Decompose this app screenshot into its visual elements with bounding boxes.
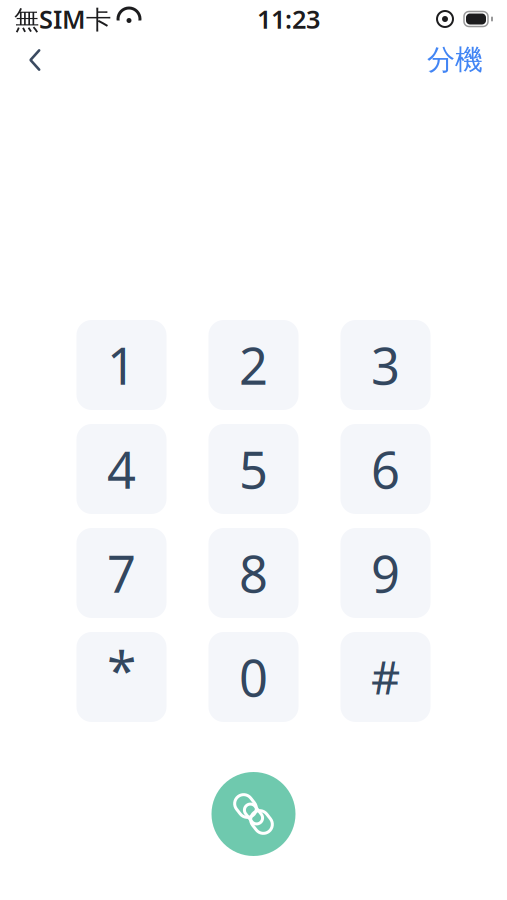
staticText: 5 <box>239 435 268 503</box>
button[interactable]: Back <box>8 36 62 84</box>
staticText: * <box>107 634 136 704</box>
staticText: 分機 <box>427 43 483 77</box>
staticText: # <box>371 647 400 707</box>
button[interactable]: Call <box>211 772 295 856</box>
button[interactable]: 6 <box>340 424 430 514</box>
staticText: 8 <box>239 539 268 607</box>
button[interactable]: 8 <box>208 528 298 618</box>
button[interactable]: 7 <box>76 528 166 618</box>
button[interactable]: 9 <box>340 528 430 618</box>
button[interactable]: # <box>340 632 430 722</box>
staticText: 無SIM卡 <box>14 2 111 36</box>
button[interactable]: 分機 <box>411 36 499 84</box>
staticText: 6 <box>371 435 400 503</box>
staticText: 2 <box>239 331 268 399</box>
staticText: 7 <box>107 539 136 607</box>
staticText: 1 <box>107 331 136 399</box>
staticText: 11:23 <box>257 2 320 36</box>
button[interactable]: 1 <box>76 320 166 410</box>
button[interactable]: 4 <box>76 424 166 514</box>
button[interactable]: 5 <box>208 424 298 514</box>
button[interactable]: 2 <box>208 320 298 410</box>
staticText: 0 <box>239 643 268 711</box>
button[interactable]: 0 <box>208 632 298 722</box>
staticText: 3 <box>371 331 400 399</box>
staticText: 4 <box>107 435 136 503</box>
button[interactable]: * <box>76 632 166 722</box>
button[interactable]: 3 <box>340 320 430 410</box>
staticText: 9 <box>371 539 400 607</box>
